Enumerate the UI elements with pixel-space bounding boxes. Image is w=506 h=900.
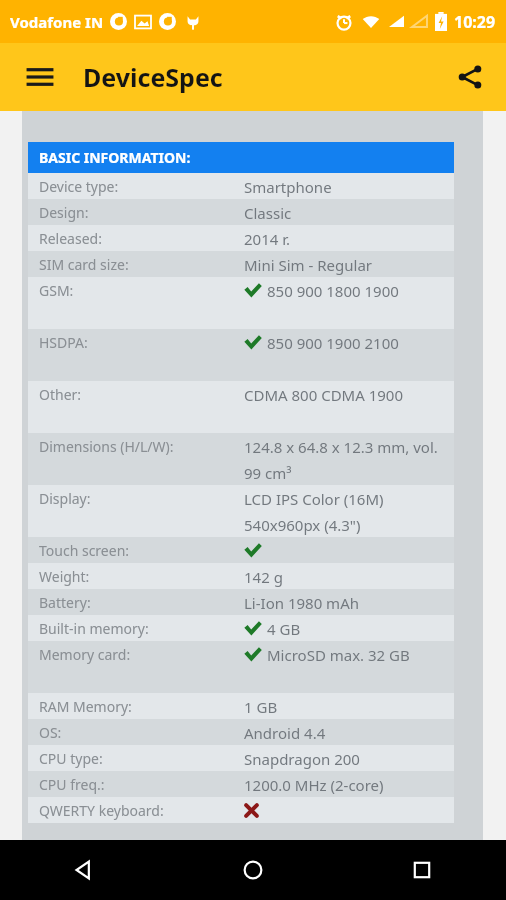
button[interactable]: Released: — [28, 225, 454, 251]
button[interactable]: CPU freq.: — [28, 771, 454, 797]
button[interactable]: QWERTY keyboard: — [28, 797, 454, 823]
staticText: Weight: — [39, 567, 90, 586]
staticText: 1200.0 MHz (2-core) — [244, 775, 384, 795]
staticText: Released: — [39, 229, 102, 248]
button[interactable]: Open navigation menu — [14, 51, 66, 103]
button[interactable]: SIM card size: — [28, 251, 454, 277]
staticText: CPU type: — [39, 749, 103, 768]
staticText: 2014 r. — [244, 229, 291, 249]
staticText: SIM card size: — [39, 255, 129, 274]
staticText: 124.8 x 64.8 x 12.3 mm, vol. 99 cm³ — [244, 437, 454, 484]
staticText: Classic — [244, 203, 292, 223]
staticText: Memory card: — [39, 645, 131, 664]
button[interactable]: BASIC INFORMATION: — [28, 142, 454, 173]
staticText: MicroSD max. 32 GB — [267, 645, 410, 665]
staticText: Device type: — [39, 177, 119, 196]
staticText: Mini Sim - Regular — [244, 255, 373, 275]
button[interactable]: Memory card: — [28, 641, 454, 693]
staticText: Display: — [39, 489, 91, 508]
staticText: 142 g — [244, 567, 283, 587]
staticText: CDMA 800 CDMA 1900 — [244, 385, 404, 405]
staticText: Li-Ion 1980 mAh — [244, 593, 359, 613]
staticText: Vodafone IN — [10, 12, 104, 32]
button[interactable]: Built-in memory: — [28, 615, 454, 641]
button[interactable]: Weight: — [28, 563, 454, 589]
button[interactable]: RAM Memory: — [28, 693, 454, 719]
button[interactable]: Device type: — [28, 173, 454, 199]
staticText: 850 900 1900 2100 — [267, 333, 399, 353]
button[interactable]: GSM: — [28, 277, 454, 329]
button[interactable]: Recent apps — [337, 840, 506, 900]
staticText: Smartphone — [244, 177, 332, 197]
button[interactable]: Share — [444, 51, 496, 103]
staticText: CPU freq.: — [39, 775, 105, 794]
button[interactable]: Dimensions (H/L/W): — [28, 433, 454, 485]
staticText: HSDPA: — [39, 333, 88, 352]
button[interactable]: OS: — [28, 719, 454, 745]
staticText: 850 900 1800 1900 — [267, 281, 399, 301]
button[interactable]: Battery: — [28, 589, 454, 615]
button[interactable]: CPU type: — [28, 745, 454, 771]
button[interactable]: Touch screen: — [28, 537, 454, 563]
staticText: RAM Memory: — [39, 697, 132, 716]
staticText: Touch screen: — [39, 541, 130, 560]
staticText: OS: — [39, 723, 62, 742]
staticText: Battery: — [39, 593, 91, 612]
button[interactable]: HSDPA: — [28, 329, 454, 381]
button[interactable]: Other: — [28, 381, 454, 433]
staticText: LCD IPS Color (16M) 540x960px (4.3") — [244, 489, 454, 536]
staticText: Other: — [39, 385, 82, 404]
staticText: BASIC INFORMATION: — [39, 148, 191, 167]
staticText: DeviceSpec — [83, 60, 223, 94]
staticText: Android 4.4 — [244, 723, 326, 743]
staticText: Design: — [39, 203, 89, 222]
button[interactable]: Display: — [28, 485, 454, 537]
button[interactable]: Home — [168, 840, 337, 900]
staticText: Snapdragon 200 — [244, 749, 360, 769]
button[interactable]: Back — [0, 840, 168, 900]
staticText: 4 GB — [267, 619, 301, 639]
staticText: 1 GB — [244, 697, 278, 717]
staticText: QWERTY keyboard: — [39, 801, 164, 820]
staticText: Dimensions (H/L/W): — [39, 437, 174, 456]
staticText: 10:29 — [454, 11, 496, 33]
staticText: GSM: — [39, 281, 74, 300]
button[interactable]: Design: — [28, 199, 454, 225]
staticText: Built-in memory: — [39, 619, 149, 638]
